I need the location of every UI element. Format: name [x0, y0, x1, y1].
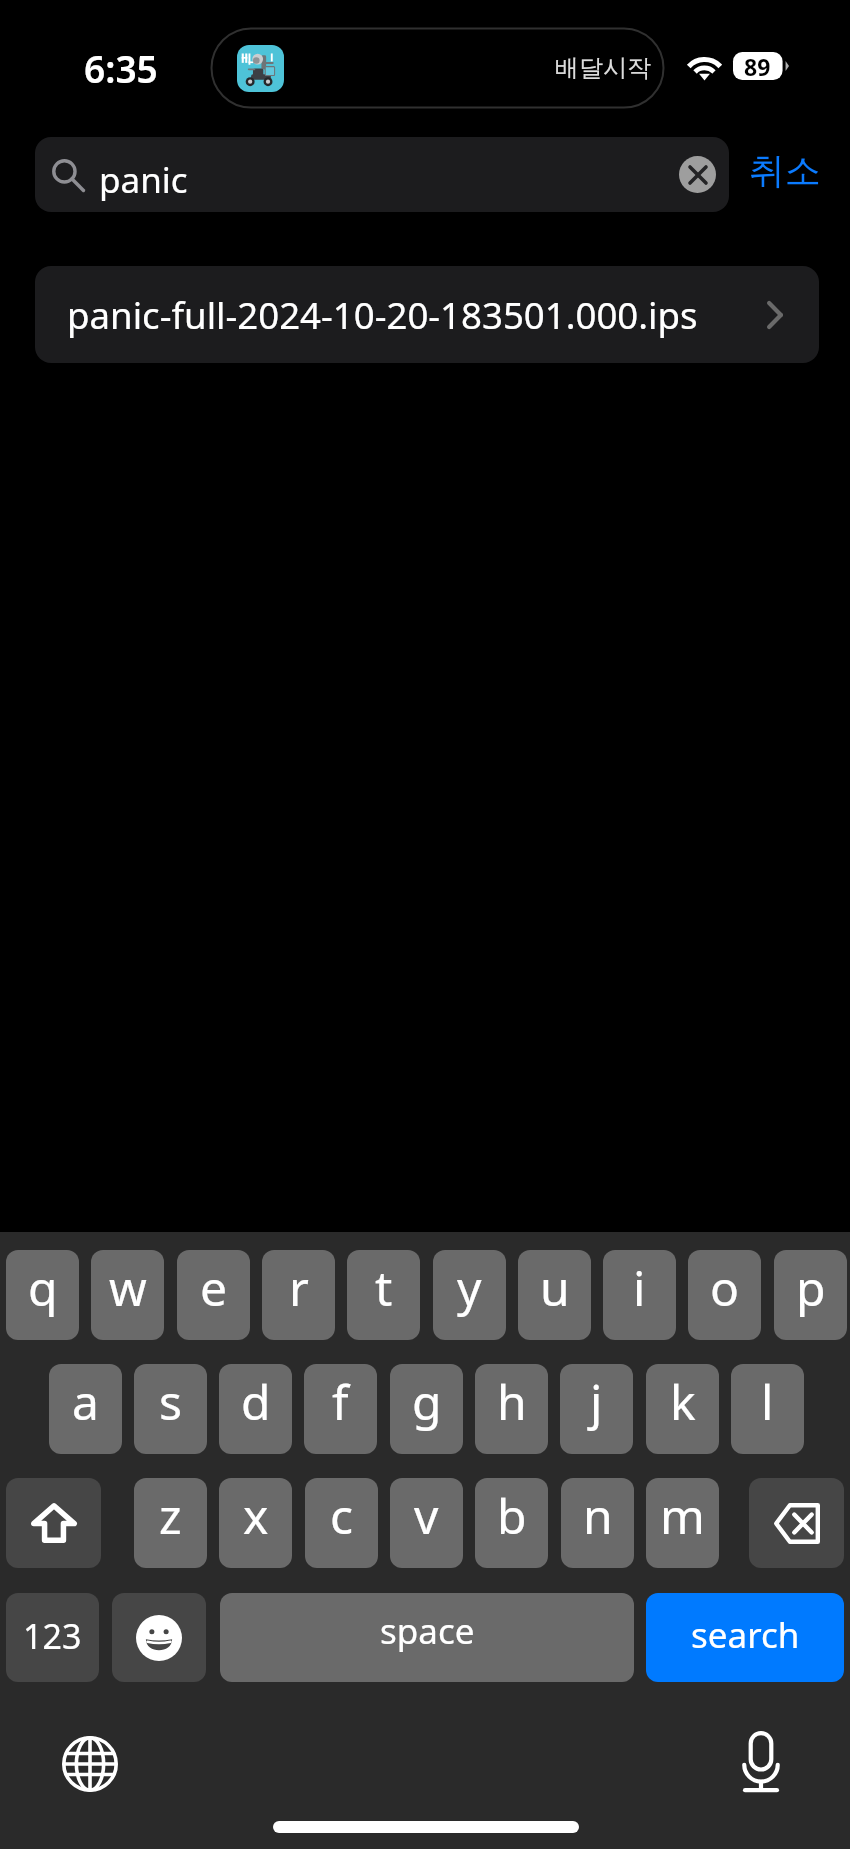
- button[interactable]: d: [219, 1364, 292, 1454]
- staticText: 취소: [749, 148, 821, 193]
- button[interactable]: i: [603, 1250, 676, 1340]
- staticText: search: [691, 1611, 800, 1659]
- staticText: k: [670, 1369, 696, 1434]
- staticText: v: [414, 1483, 439, 1548]
- button[interactable]: Shift: [6, 1478, 101, 1568]
- button[interactable]: z: [134, 1478, 207, 1568]
- button[interactable]: p: [774, 1250, 847, 1340]
- button[interactable]: q: [6, 1250, 79, 1340]
- button[interactable]: l: [731, 1364, 804, 1454]
- staticText: o: [710, 1255, 740, 1320]
- staticText: b: [497, 1483, 527, 1548]
- staticText: c: [330, 1483, 354, 1548]
- button[interactable]: 취소: [740, 133, 830, 207]
- staticText: d: [241, 1369, 271, 1434]
- staticText: s: [159, 1369, 182, 1434]
- button[interactable]: w: [91, 1250, 164, 1340]
- button[interactable]: 123: [6, 1593, 99, 1682]
- staticText: m: [660, 1483, 705, 1548]
- staticText: n: [583, 1483, 613, 1548]
- staticText: r: [289, 1255, 309, 1320]
- staticText: 123: [23, 1613, 82, 1659]
- button[interactable]: space: [220, 1593, 634, 1682]
- staticText: j: [590, 1369, 603, 1434]
- button[interactable]: panic: [35, 137, 729, 212]
- staticText: l: [761, 1369, 774, 1434]
- staticText: panic: [99, 156, 188, 204]
- staticText: f: [332, 1369, 349, 1434]
- staticText: panic-full-2024-10-20-183501.000.ips: [67, 290, 698, 340]
- button[interactable]: o: [688, 1250, 761, 1340]
- staticText: g: [412, 1369, 442, 1434]
- staticText: z: [159, 1483, 182, 1548]
- staticText: space: [380, 1607, 475, 1655]
- button[interactable]: search: [646, 1593, 844, 1682]
- button[interactable]: x: [219, 1478, 292, 1568]
- button[interactable]: c: [305, 1478, 378, 1568]
- staticText: e: [200, 1255, 228, 1320]
- button[interactable]: s: [134, 1364, 207, 1454]
- button[interactable]: k: [646, 1364, 719, 1454]
- button[interactable]: Emoji keyboard: [112, 1593, 206, 1682]
- button[interactable]: j: [560, 1364, 633, 1454]
- button[interactable]: Live activity: [211, 28, 664, 108]
- button[interactable]: Clear text: [679, 156, 716, 193]
- staticText: q: [28, 1255, 58, 1320]
- button[interactable]: m: [646, 1478, 719, 1568]
- button[interactable]: v: [390, 1478, 463, 1568]
- staticText: a: [72, 1369, 99, 1434]
- button[interactable]: h: [475, 1364, 548, 1454]
- staticText: y: [457, 1255, 482, 1320]
- button[interactable]: y: [433, 1250, 506, 1340]
- staticText: 6:35: [84, 43, 158, 93]
- staticText: u: [540, 1255, 570, 1320]
- button[interactable]: a: [49, 1364, 122, 1454]
- staticText: t: [375, 1255, 393, 1320]
- staticText: h: [497, 1369, 527, 1434]
- button[interactable]: f: [304, 1364, 377, 1454]
- staticText: 배달시작: [555, 53, 651, 83]
- staticText: i: [633, 1255, 646, 1320]
- button[interactable]: u: [518, 1250, 591, 1340]
- staticText: p: [796, 1255, 826, 1320]
- button[interactable]: Dictation: [740, 1731, 782, 1793]
- staticText: x: [243, 1483, 269, 1548]
- button[interactable]: b: [475, 1478, 548, 1568]
- staticText: w: [109, 1255, 147, 1320]
- button[interactable]: t: [347, 1250, 420, 1340]
- button[interactable]: r: [262, 1250, 335, 1340]
- button[interactable]: Switch keyboard language: [62, 1736, 118, 1792]
- staticText: 89: [744, 51, 771, 79]
- button[interactable]: Backspace: [749, 1478, 844, 1568]
- button[interactable]: g: [390, 1364, 463, 1454]
- button[interactable]: e: [177, 1250, 250, 1340]
- button[interactable]: panic-full-2024-10-20-183501.000.ips: [35, 266, 819, 363]
- button[interactable]: n: [561, 1478, 634, 1568]
